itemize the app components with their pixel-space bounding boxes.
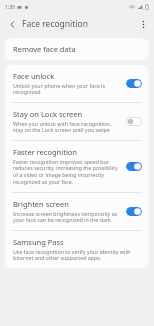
staticText: Use face recognition to verify your iden… bbox=[13, 248, 142, 262]
button[interactable]: Toggle on bbox=[126, 79, 142, 88]
button[interactable]: Stay on Lock screen bbox=[5, 103, 149, 140]
staticText: Faster recognition bbox=[13, 147, 77, 157]
staticText: When you unlock with face recognition, s… bbox=[13, 120, 121, 134]
button[interactable]: Faster recognition bbox=[5, 141, 149, 192]
staticText: Faster recognition improves speed but re… bbox=[13, 158, 121, 186]
staticText: Samsung Pass bbox=[13, 237, 64, 247]
staticText: Increase screen brightness temporarily s… bbox=[13, 210, 121, 224]
button[interactable]: Back bbox=[5, 17, 19, 31]
button[interactable]: Toggle on bbox=[126, 162, 142, 171]
button[interactable]: Remove face data bbox=[5, 38, 149, 60]
button[interactable]: Brighten screen bbox=[5, 193, 149, 230]
button[interactable]: Samsung Pass bbox=[5, 231, 149, 268]
button[interactable]: More options bbox=[136, 17, 150, 31]
staticText: Brighten screen bbox=[13, 199, 69, 209]
staticText: 1:30 bbox=[5, 4, 15, 11]
button[interactable]: Toggle off bbox=[126, 117, 142, 126]
staticText: Face recognition bbox=[22, 18, 88, 30]
staticText: Unlock your phone when your face is reco… bbox=[13, 82, 121, 96]
button[interactable]: Face unlock bbox=[5, 65, 149, 102]
staticText: Remove face data bbox=[13, 44, 76, 54]
staticText: Stay on Lock screen bbox=[13, 109, 83, 119]
staticText: Face unlock bbox=[13, 71, 55, 81]
button[interactable]: Toggle on bbox=[126, 207, 142, 216]
